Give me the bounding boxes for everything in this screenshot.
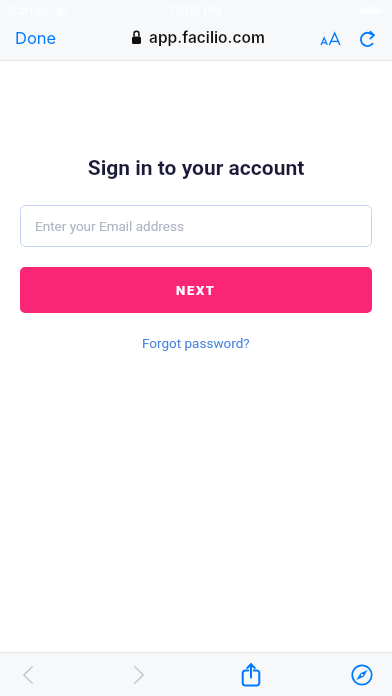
- button[interactable]: Forward: [119, 655, 159, 695]
- staticText: NEXT: [176, 283, 216, 298]
- button[interactable]: app.facilio.com: [122, 23, 275, 52]
- staticText: Done: [15, 28, 57, 48]
- button[interactable]: Text size options: [315, 28, 346, 50]
- button[interactable]: Done: [0, 22, 71, 54]
- button[interactable]: NEXT: [20, 267, 372, 313]
- staticText: app.facilio.com: [149, 28, 265, 47]
- button[interactable]: Reload page: [354, 26, 392, 51]
- staticText: Enter your Email address: [35, 218, 184, 234]
- button[interactable]: Back: [8, 655, 48, 695]
- button[interactable]: Share: [231, 655, 271, 695]
- button[interactable]: Open in Safari: [342, 655, 382, 695]
- button[interactable]: Enter your Email address: [20, 205, 372, 247]
- button[interactable]: Forgot password?: [136, 333, 256, 353]
- staticText: Sign in to your account: [0, 156, 392, 181]
- staticText: Forgot password?: [142, 335, 250, 351]
